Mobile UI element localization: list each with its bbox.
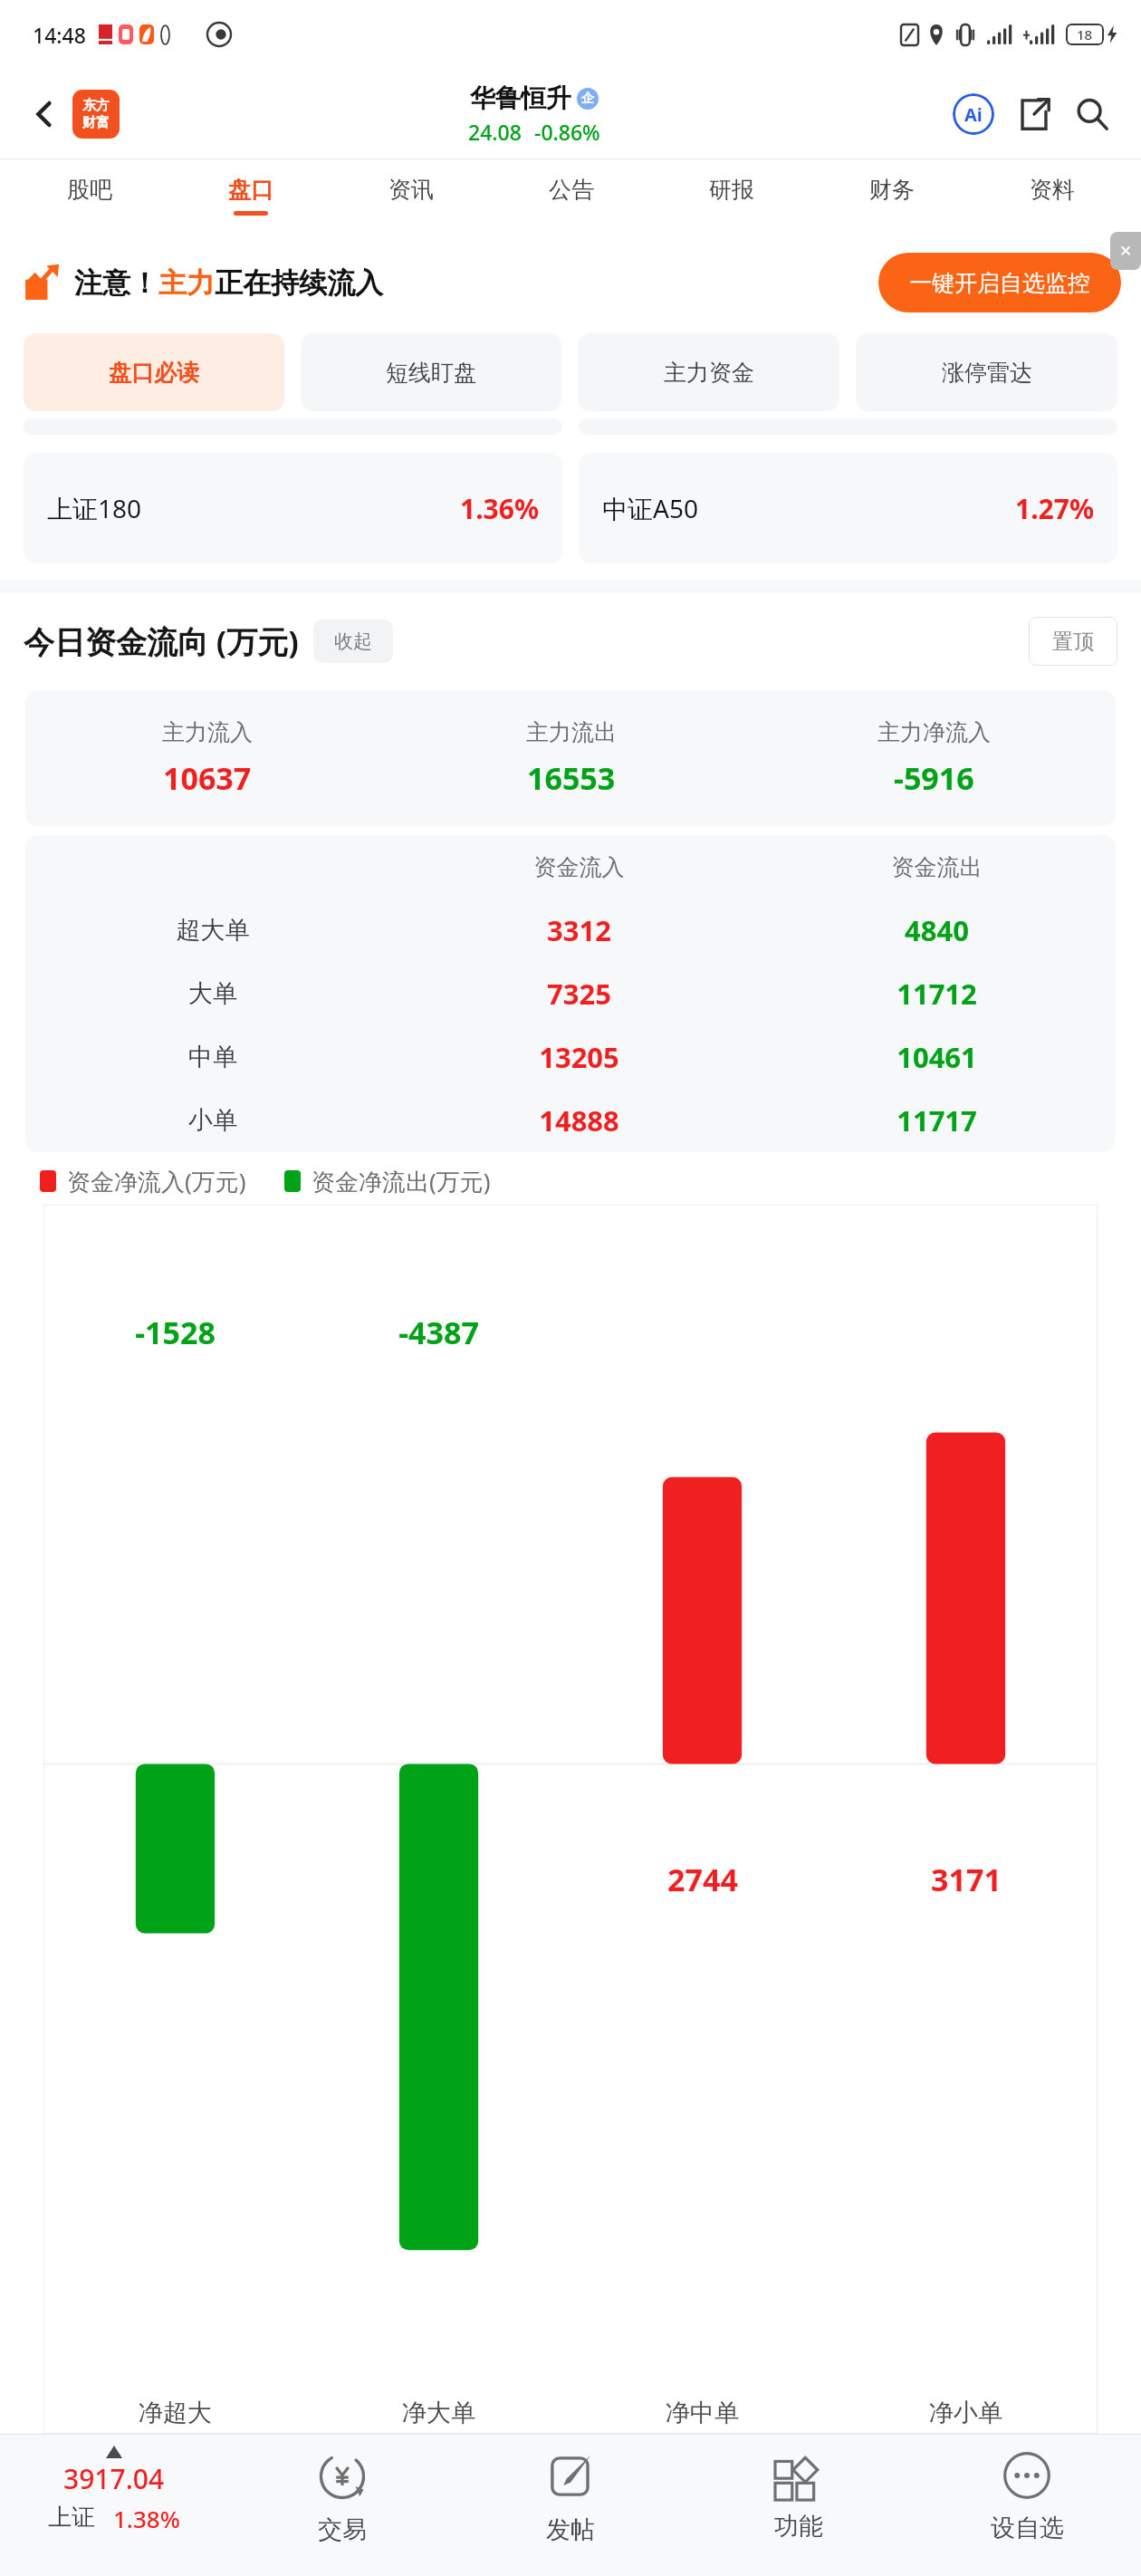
button[interactable]: 财务 <box>811 159 972 232</box>
button[interactable]: 上证180 <box>47 453 539 563</box>
staticText: 净大单 <box>402 2398 475 2428</box>
button[interactable]: 置顶 <box>1029 617 1117 666</box>
staticText: 今日资金流向 (万元) <box>24 620 299 662</box>
staticText: 10461 <box>758 1038 1116 1076</box>
staticText: 华鲁恒升 <box>470 82 571 114</box>
staticText: 净小单 <box>929 2398 1002 2428</box>
button[interactable]: 资讯 <box>331 159 491 232</box>
button[interactable]: 收起 <box>313 620 393 663</box>
button[interactable]: Close <box>1110 232 1141 270</box>
staticText: 主力净流入 <box>877 718 991 746</box>
staticText: 注意！ <box>74 265 158 301</box>
button[interactable]: 发帖 <box>456 2435 685 2576</box>
staticText: 交易 <box>318 2514 367 2545</box>
staticText: -0.86% <box>534 118 600 146</box>
button[interactable]: 股吧 <box>9 159 170 232</box>
staticText: 收起 <box>334 630 372 653</box>
staticText: -4387 <box>398 1312 479 1353</box>
staticText: 10637 <box>163 757 252 799</box>
button[interactable]: 研报 <box>651 159 811 232</box>
staticText: 净超大 <box>139 2398 212 2428</box>
staticText: 正在持续流入 <box>215 265 383 301</box>
staticText: 东方 <box>82 97 110 114</box>
staticText: 设自选 <box>991 2513 1064 2543</box>
button[interactable]: 主力资金 <box>578 333 839 411</box>
staticText: 11717 <box>758 1101 1116 1139</box>
staticText: 资金净流入(万元) <box>67 1165 246 1197</box>
staticText: -1528 <box>135 1312 216 1353</box>
staticText: 1.27% <box>1015 490 1094 527</box>
staticText: 资金流出 <box>758 853 1116 881</box>
staticText: 18 <box>1077 25 1093 43</box>
staticText: 4840 <box>758 911 1116 949</box>
button[interactable]: 短线盯盘 <box>301 333 561 411</box>
button[interactable]: 资料 <box>972 159 1132 232</box>
button[interactable]: 公告 <box>491 159 651 232</box>
staticText: 大单 <box>25 978 400 1009</box>
staticText: 超大单 <box>25 915 400 946</box>
staticText: 研报 <box>709 176 754 204</box>
staticText: ✕ <box>1119 242 1133 260</box>
staticText: 主力流入 <box>162 718 253 746</box>
staticText: 上证180 <box>47 491 142 525</box>
staticText: 资讯 <box>388 176 434 204</box>
staticText: -5916 <box>894 757 974 799</box>
staticText: 公告 <box>549 176 594 204</box>
staticText: 涨停雷达 <box>942 359 1032 387</box>
staticText: 财富 <box>82 114 110 131</box>
staticText: 11712 <box>758 975 1116 1013</box>
staticText: 发帖 <box>546 2514 595 2545</box>
staticText: 企 <box>581 91 594 107</box>
staticText: 中单 <box>25 1042 400 1072</box>
staticText: 上证 <box>48 2503 95 2533</box>
button[interactable]: 交易 <box>228 2435 456 2576</box>
button[interactable]: 设自选 <box>913 2435 1141 2576</box>
staticText: 3917.04 <box>63 2460 165 2497</box>
staticText: 财务 <box>869 176 915 204</box>
staticText: 2744 <box>667 1859 738 1900</box>
button[interactable]: 中证A50 <box>602 453 1094 563</box>
button[interactable]: Back <box>20 90 69 139</box>
button[interactable]: Search <box>1069 91 1116 138</box>
button[interactable]: 3917.04 <box>0 2435 228 2576</box>
staticText: 16553 <box>527 757 616 799</box>
staticText: 3171 <box>931 1859 1002 1900</box>
staticText: 1.38% <box>113 2503 180 2534</box>
staticText: 主力 <box>158 265 215 301</box>
staticText: 一键开启自选监控 <box>909 269 1090 297</box>
staticText: 3312 <box>400 911 758 949</box>
staticText: 13205 <box>400 1038 758 1076</box>
staticText: 股吧 <box>67 176 112 204</box>
staticText: 7325 <box>400 975 758 1013</box>
button[interactable]: East Money <box>72 90 120 139</box>
staticText: 盘口必读 <box>109 359 199 387</box>
staticText: 24.08 <box>468 118 522 146</box>
staticText: 资金流入 <box>400 853 758 881</box>
staticText: 1.36% <box>460 490 539 527</box>
button[interactable]: 一键开启自选监控 <box>878 253 1121 312</box>
staticText: 短线盯盘 <box>386 359 476 387</box>
button[interactable]: 盘口 <box>170 159 331 232</box>
staticText: 置顶 <box>1052 629 1094 655</box>
button[interactable]: AI assistant <box>949 90 998 139</box>
staticText: 资金净流出(万元) <box>312 1165 491 1197</box>
staticText: 14:48 <box>33 21 86 49</box>
staticText: 资料 <box>1030 176 1075 204</box>
staticText: 净中单 <box>666 2398 739 2428</box>
button[interactable]: Share <box>1011 91 1058 138</box>
staticText: 14888 <box>400 1101 758 1139</box>
staticText: 小单 <box>25 1105 400 1136</box>
button[interactable]: 功能 <box>685 2435 913 2576</box>
button[interactable]: 涨停雷达 <box>856 333 1117 411</box>
staticText: Ai <box>964 102 983 127</box>
staticText: 功能 <box>774 2511 823 2542</box>
button[interactable]: 盘口必读 <box>24 333 284 411</box>
staticText: 主力流出 <box>526 718 617 746</box>
staticText: 盘口 <box>228 176 273 204</box>
staticText: 主力资金 <box>664 359 754 387</box>
staticText: 中证A50 <box>602 491 698 525</box>
